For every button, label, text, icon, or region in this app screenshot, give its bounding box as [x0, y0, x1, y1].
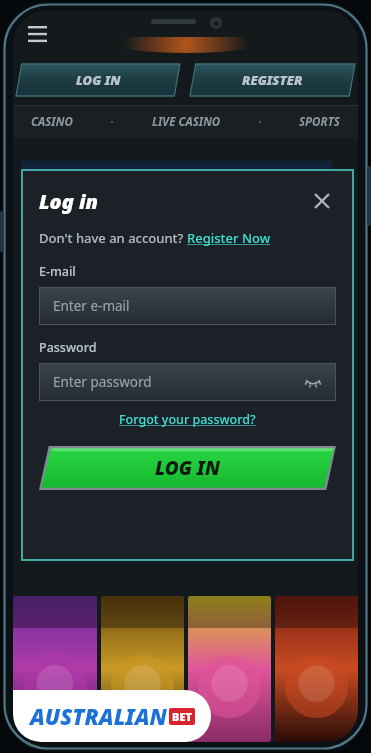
staticText: Enter password	[53, 373, 152, 391]
staticText: LIVE CASINO	[152, 114, 221, 130]
button[interactable]: Enter password	[39, 363, 336, 401]
button[interactable]: Forgot your password?	[39, 411, 336, 428]
button[interactable]: Menu	[21, 19, 53, 51]
button[interactable]: Register Now	[187, 229, 271, 247]
staticText: LOG IN	[76, 71, 121, 89]
button[interactable]: Enter e-mail	[39, 287, 336, 325]
staticText: Don't have an account?	[39, 229, 187, 247]
button[interactable]: CASINO	[29, 108, 75, 136]
staticText: Register Now	[187, 229, 271, 247]
staticText: Password	[39, 339, 97, 356]
button[interactable]: Close	[308, 187, 336, 215]
button[interactable]: Australian.bet logo	[13, 690, 211, 742]
staticText: Forgot your password?	[119, 411, 256, 428]
staticText: REGISTER	[242, 71, 303, 89]
staticText: BET	[172, 709, 192, 724]
staticText: Log in	[39, 188, 98, 215]
button[interactable]: LIVE CASINO	[150, 108, 223, 136]
button[interactable]: LOG IN	[16, 64, 180, 96]
staticText: SPORTS	[299, 114, 340, 130]
button[interactable]: SPORTS	[297, 108, 342, 136]
staticText: LOG IN	[155, 455, 220, 481]
button[interactable]: Game 1	[101, 596, 184, 742]
staticText: AUSTRALIAN	[30, 701, 167, 731]
staticText: CASINO	[31, 114, 73, 130]
button[interactable]: Show password	[302, 371, 324, 393]
staticText: E-mail	[39, 263, 76, 280]
button[interactable]: REGISTER	[190, 64, 355, 96]
button[interactable]: Game 3	[275, 596, 358, 742]
button[interactable]: Game 0	[13, 596, 97, 742]
staticText: Enter e-mail	[53, 297, 130, 315]
button[interactable]: LOG IN	[39, 446, 336, 490]
button[interactable]: Game 2	[188, 596, 271, 742]
